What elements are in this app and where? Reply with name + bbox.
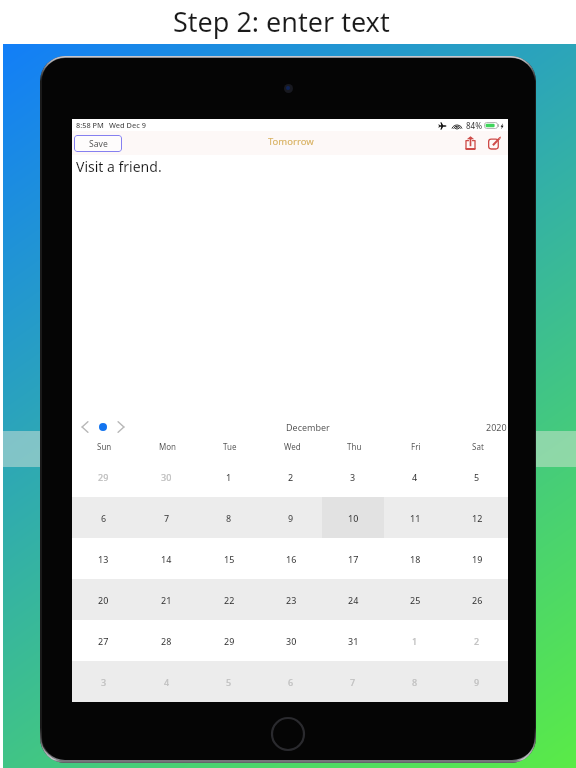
- button[interactable]: 17: [322, 538, 384, 579]
- button[interactable]: 28: [135, 620, 198, 661]
- staticText: Tomorrow: [268, 135, 314, 148]
- staticText: 2: [288, 471, 294, 483]
- button[interactable]: 26: [446, 579, 508, 620]
- staticText: 4: [164, 676, 170, 688]
- staticText: 29: [224, 635, 235, 647]
- button[interactable]: 13: [72, 538, 135, 579]
- staticText: 19: [472, 553, 483, 565]
- button[interactable]: 18: [384, 538, 446, 579]
- button[interactable]: 16: [260, 538, 322, 579]
- staticText: Wed Dec 9: [109, 120, 146, 130]
- button[interactable]: 1: [384, 620, 446, 661]
- button[interactable]: 9: [446, 661, 508, 702]
- staticText: Fri: [411, 441, 421, 452]
- button[interactable]: 6: [72, 497, 135, 538]
- button[interactable]: Share: [462, 135, 478, 151]
- button[interactable]: 11: [384, 497, 446, 538]
- staticText: 1: [412, 635, 418, 647]
- staticText: 18: [410, 553, 421, 565]
- staticText: 15: [224, 553, 235, 565]
- staticText: 30: [161, 471, 172, 483]
- button[interactable]: 29: [72, 456, 135, 497]
- button[interactable]: 3: [322, 456, 384, 497]
- staticText: 10: [348, 512, 359, 524]
- staticText: 3: [101, 676, 107, 688]
- button[interactable]: 21: [135, 579, 198, 620]
- button[interactable]: 14: [135, 538, 198, 579]
- button[interactable]: 9: [260, 497, 322, 538]
- button[interactable]: 23: [260, 579, 322, 620]
- staticText: Thu: [347, 441, 362, 452]
- staticText: 84%: [466, 120, 482, 131]
- staticText: 3: [350, 471, 356, 483]
- staticText: 8:58 PM: [76, 120, 104, 130]
- button[interactable]: 7: [135, 497, 198, 538]
- button[interactable]: 29: [198, 620, 260, 661]
- staticText: 25: [410, 594, 421, 606]
- button[interactable]: 5: [446, 456, 508, 497]
- button[interactable]: 15: [198, 538, 260, 579]
- staticText: 20: [98, 594, 109, 606]
- button[interactable]: 20: [72, 579, 135, 620]
- staticText: 24: [348, 594, 359, 606]
- staticText: 28: [161, 635, 172, 647]
- button[interactable]: 24: [322, 579, 384, 620]
- staticText: 11: [410, 512, 421, 524]
- staticText: 2020: [486, 421, 507, 433]
- button[interactable]: 2: [260, 456, 322, 497]
- staticText: December: [286, 421, 330, 433]
- button[interactable]: Visit a friend.: [72, 155, 508, 413]
- button[interactable]: 12: [446, 497, 508, 538]
- staticText: 8: [412, 676, 418, 688]
- staticText: Sun: [97, 441, 112, 452]
- button[interactable]: Today: [96, 417, 110, 437]
- staticText: Step 2: enter text: [173, 3, 390, 40]
- staticText: 12: [472, 512, 483, 524]
- staticText: 26: [472, 594, 483, 606]
- button[interactable]: 31: [322, 620, 384, 661]
- button[interactable]: 30: [135, 456, 198, 497]
- staticText: Tue: [223, 441, 237, 452]
- button[interactable]: 30: [260, 620, 322, 661]
- staticText: 9: [288, 512, 294, 524]
- staticText: 6: [101, 512, 107, 524]
- staticText: 17: [348, 553, 359, 565]
- staticText: 30: [286, 635, 297, 647]
- button[interactable]: Compose: [486, 135, 502, 151]
- button[interactable]: 25: [384, 579, 446, 620]
- button[interactable]: 22: [198, 579, 260, 620]
- staticText: Mon: [159, 441, 177, 452]
- staticText: 2: [474, 635, 480, 647]
- staticText: 13: [98, 553, 109, 565]
- staticText: 16: [286, 553, 297, 565]
- staticText: 8: [226, 512, 232, 524]
- button[interactable]: Home: [264, 710, 312, 758]
- button[interactable]: Save: [74, 135, 122, 152]
- button[interactable]: 1: [198, 456, 260, 497]
- staticText: Visit a friend.: [76, 157, 162, 176]
- staticText: 6: [288, 676, 294, 688]
- staticText: 4: [412, 471, 418, 483]
- staticText: 21: [161, 594, 172, 606]
- staticText: 31: [348, 635, 359, 647]
- staticText: 27: [98, 635, 109, 647]
- button[interactable]: Next month: [113, 417, 129, 437]
- staticText: 7: [350, 676, 356, 688]
- button[interactable]: Previous month: [77, 417, 93, 437]
- button[interactable]: 8: [384, 661, 446, 702]
- staticText: 5: [474, 471, 480, 483]
- button[interactable]: 2: [446, 620, 508, 661]
- button[interactable]: 27: [72, 620, 135, 661]
- button[interactable]: 10: [322, 497, 384, 538]
- staticText: 1: [226, 471, 232, 483]
- staticText: 22: [224, 594, 235, 606]
- button[interactable]: 19: [446, 538, 508, 579]
- button[interactable]: 4: [384, 456, 446, 497]
- staticText: Save: [89, 138, 108, 150]
- button[interactable]: 8: [198, 497, 260, 538]
